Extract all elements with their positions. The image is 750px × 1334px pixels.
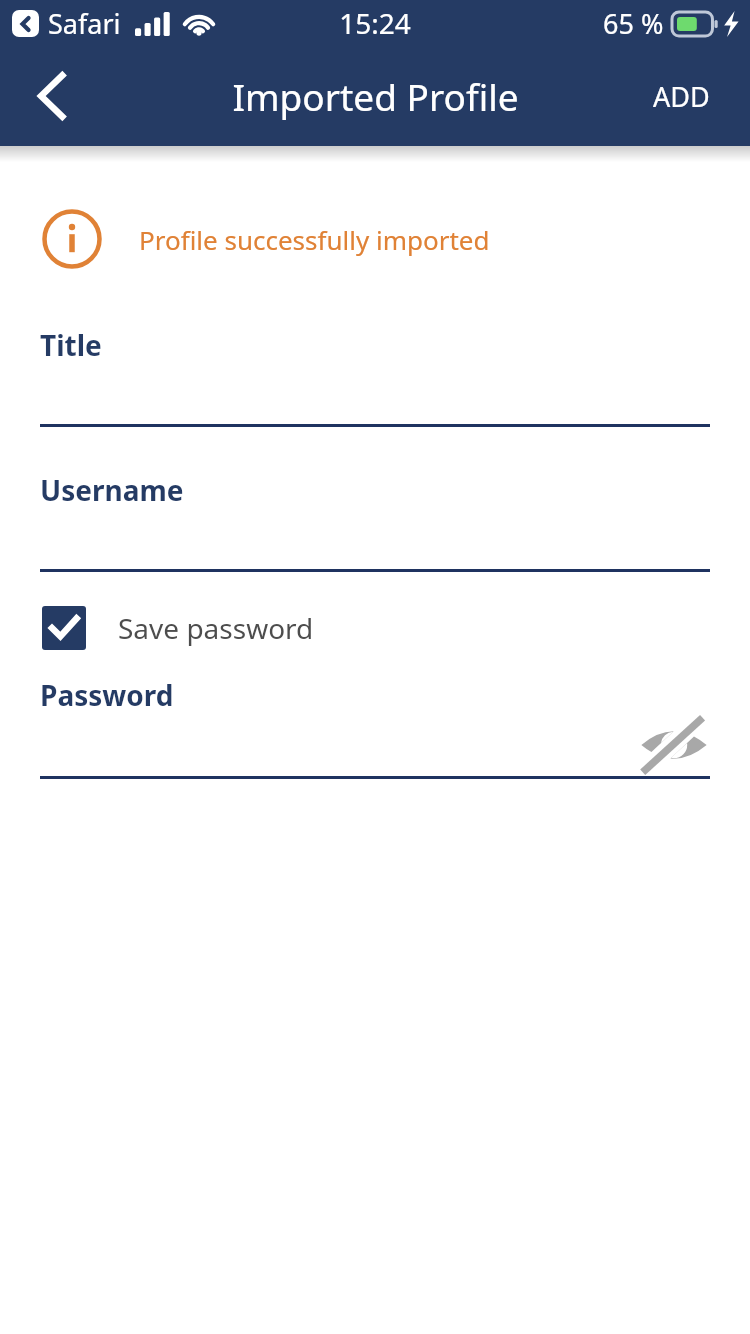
staticText: Imported Profile [232,71,519,121]
staticText: 15:24 [339,4,411,42]
button[interactable]: Back [16,58,92,134]
staticText: 65 % [603,5,664,42]
button[interactable]: Save password [42,600,314,656]
staticText: Save password [118,609,314,647]
button[interactable]: ADD [639,64,724,129]
staticText: Title [40,326,102,364]
staticText: Password [40,676,174,714]
staticText: Username [40,471,184,509]
staticText: Safari [48,5,121,42]
staticText: ADD [653,78,710,115]
button[interactable]: Show password [638,717,710,773]
staticText: Profile successfully imported [139,222,490,257]
